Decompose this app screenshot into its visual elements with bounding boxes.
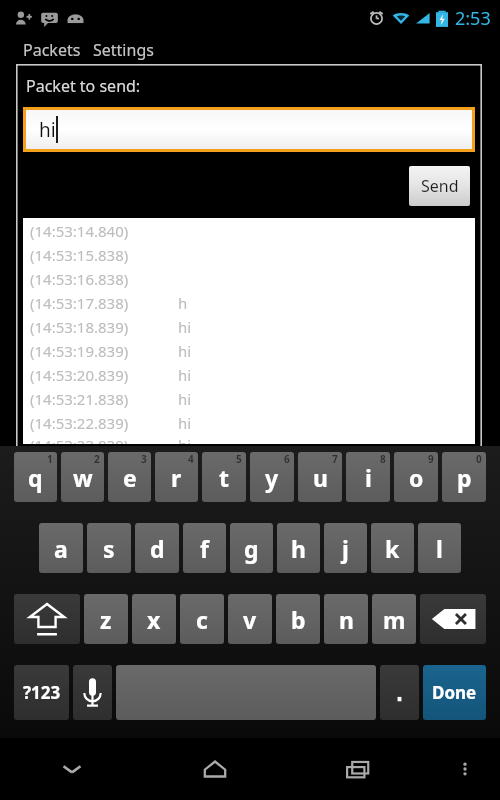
staticText: b [291,604,306,635]
button[interactable]: Hide keyboard [0,738,143,800]
staticText: 2 [94,452,100,466]
button[interactable]: hi [23,107,475,152]
staticText: y [265,462,279,493]
button[interactable]: p [442,452,486,502]
staticText: (14:53:21.838) [30,389,178,409]
staticText: e [123,462,137,493]
button[interactable]: Menu [429,738,500,800]
button[interactable]: e [108,452,151,502]
button[interactable]: g [230,523,273,573]
button[interactable]: k [371,523,414,573]
staticText: Settings [93,39,154,61]
staticText: 9 [428,452,434,466]
button[interactable]: w [61,452,104,502]
button[interactable]: j [324,523,367,573]
button[interactable]: Period [380,665,419,720]
staticText: k [385,533,400,564]
button[interactable]: z [84,594,128,644]
button[interactable]: Home [143,738,286,800]
button[interactable]: a [39,523,83,573]
button[interactable]: Shift [14,594,80,644]
button[interactable]: Settings [93,39,154,61]
staticText: l [436,533,443,564]
staticText: j [342,533,349,564]
button[interactable]: f [183,523,226,573]
button[interactable]: m [372,594,416,644]
staticText: (14:53:19.839) [30,341,178,361]
staticText: h [291,533,306,564]
staticText: hi [178,389,192,409]
staticText: g [244,533,259,564]
staticText: 8 [380,452,386,466]
staticText: (14:53:18.839) [30,317,178,337]
staticText: (14:53:23.839) [30,435,178,444]
staticText: 2:53 [455,6,491,31]
button[interactable]: d [135,523,179,573]
staticText: Packets [23,39,81,61]
button[interactable]: l [418,523,461,573]
button[interactable]: Send [409,166,470,206]
staticText: i [365,462,372,493]
button[interactable]: s [87,523,131,573]
staticText: f [200,533,209,564]
button[interactable]: n [324,594,368,644]
button[interactable]: Packets [23,39,81,61]
staticText: Send [421,175,459,197]
button[interactable]: v [228,594,272,644]
staticText: v [243,604,257,635]
staticText: (14:53:16.838) [30,269,178,289]
staticText: q [28,462,43,493]
button[interactable]: Voice input [73,665,112,720]
staticText: x [147,604,161,635]
staticText: hi [178,435,192,444]
staticText: a [54,533,68,564]
staticText: o [409,462,424,493]
staticText: t [219,462,229,493]
button[interactable]: (14:53:14.840) [23,218,475,444]
staticText: 7 [332,452,338,466]
button[interactable]: ?123 [14,665,69,720]
button[interactable]: u [298,452,342,502]
button[interactable]: b [276,594,320,644]
staticText: m [383,604,406,635]
staticText: w [73,462,93,493]
button[interactable]: y [250,452,294,502]
button[interactable]: Done [423,665,486,720]
staticText: c [196,604,208,635]
button[interactable]: q [14,452,57,502]
staticText: 1 [47,452,53,466]
button[interactable]: Backspace [420,594,486,644]
button[interactable]: i [346,452,390,502]
staticText: hi [178,341,192,361]
staticText: p [457,462,472,493]
staticText: hi [178,413,192,433]
staticText: 6 [284,452,290,466]
staticText: hi [178,365,192,385]
staticText: (14:53:22.839) [30,413,178,433]
staticText: d [150,533,165,564]
button[interactable]: h [277,523,320,573]
staticText: (14:53:17.838) [30,293,178,313]
button[interactable]: r [155,452,198,502]
staticText: (14:53:20.839) [30,365,178,385]
staticText: h [178,293,188,313]
staticText: Done [432,681,477,704]
staticText: 3 [141,452,147,466]
staticText: 4 [188,452,194,466]
staticText: Packet to send: [26,75,141,97]
staticText: ?123 [23,681,61,704]
button[interactable]: Recent apps [286,738,429,800]
button[interactable]: Space [116,665,376,720]
staticText: 5 [236,452,242,466]
button[interactable]: x [132,594,176,644]
button[interactable]: t [202,452,246,502]
staticText: z [100,604,112,635]
staticText: n [339,604,354,635]
staticText: 0 [476,452,482,466]
button[interactable]: o [394,452,438,502]
staticText: hi [178,317,192,337]
staticText: (14:53:14.840) [30,221,178,241]
staticText: u [313,462,328,493]
button[interactable]: c [180,594,224,644]
staticText: s [103,533,115,564]
